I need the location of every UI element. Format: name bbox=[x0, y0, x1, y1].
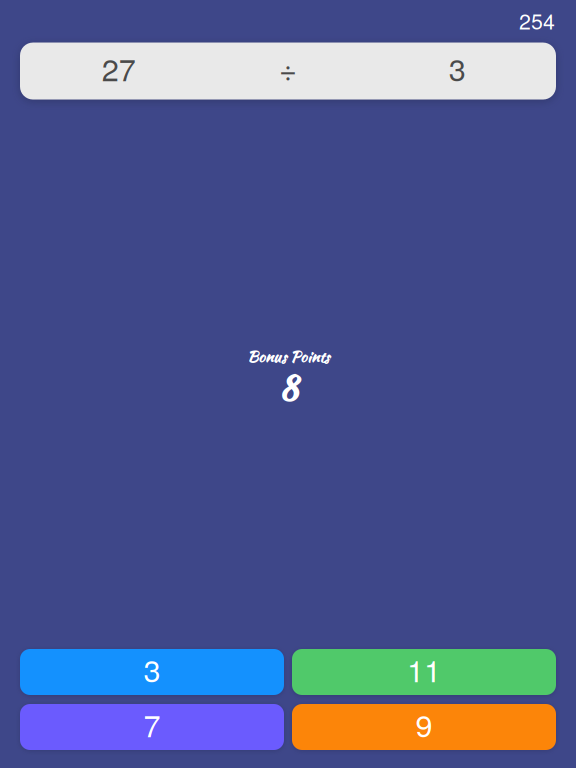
button[interactable]: 9 bbox=[292, 704, 556, 750]
staticText: 7 bbox=[143, 702, 160, 746]
button[interactable]: 7 bbox=[20, 704, 284, 750]
staticText: ÷ bbox=[279, 46, 297, 90]
staticText: 27 bbox=[102, 46, 136, 90]
staticText: 254 bbox=[519, 5, 555, 35]
staticText: 8 bbox=[278, 365, 297, 413]
button[interactable]: 3 bbox=[20, 649, 284, 695]
staticText: 3 bbox=[449, 46, 466, 90]
staticText: Bonus Points bbox=[247, 345, 329, 368]
button[interactable]: 11 bbox=[292, 649, 556, 695]
staticText: 11 bbox=[407, 647, 441, 691]
staticText: 3 bbox=[143, 647, 160, 691]
staticText: 9 bbox=[415, 702, 432, 746]
